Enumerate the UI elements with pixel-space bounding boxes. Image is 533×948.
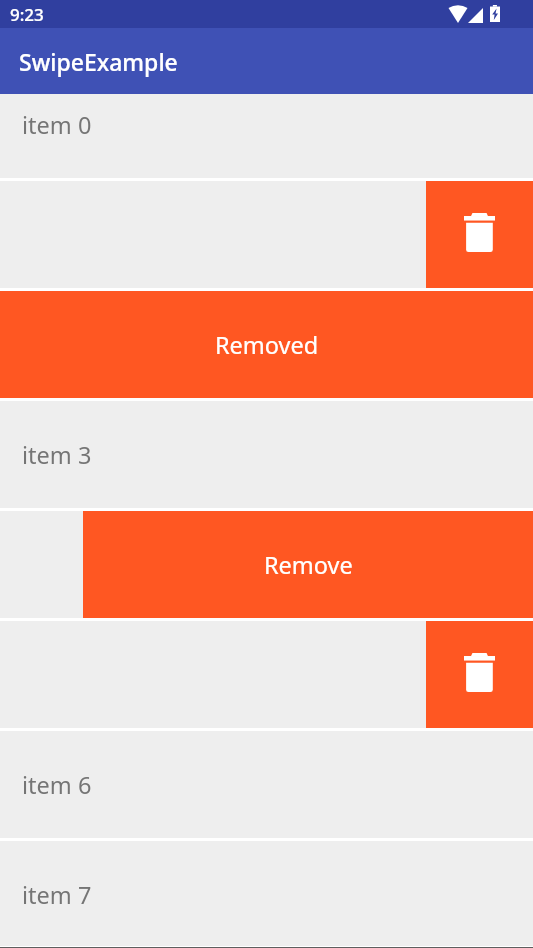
button[interactable]: Removed bbox=[0, 291, 533, 398]
button[interactable]: item 7 bbox=[0, 841, 533, 948]
button[interactable]: Delete bbox=[0, 181, 533, 288]
button[interactable]: item 3 bbox=[0, 401, 533, 508]
staticText: SwipeExample bbox=[19, 46, 178, 77]
button[interactable]: Delete bbox=[426, 181, 533, 288]
staticText: Remove bbox=[264, 549, 353, 581]
staticText: Removed bbox=[215, 329, 319, 361]
button[interactable]: item 6 bbox=[0, 731, 533, 838]
button[interactable]: Remove bbox=[83, 511, 533, 618]
button[interactable]: Remove bbox=[0, 511, 533, 618]
staticText: item 0 bbox=[22, 109, 92, 141]
button[interactable]: item 0 bbox=[0, 94, 533, 178]
staticText: item 3 bbox=[22, 439, 92, 471]
button[interactable]: Delete bbox=[0, 621, 533, 728]
button[interactable]: Delete bbox=[426, 621, 533, 728]
staticText: item 6 bbox=[22, 769, 92, 801]
staticText: item 7 bbox=[22, 879, 92, 911]
staticText: 9:23 bbox=[10, 3, 44, 26]
